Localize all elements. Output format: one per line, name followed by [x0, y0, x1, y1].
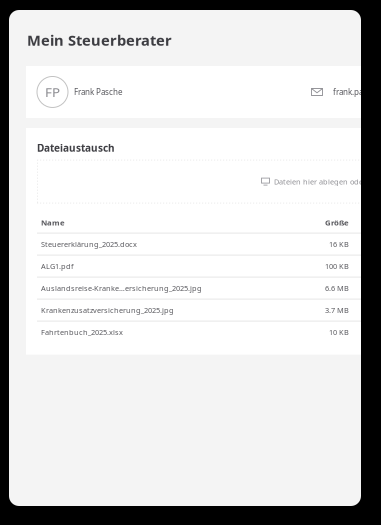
staticText: 10 KB: [329, 327, 349, 337]
button[interactable]: Fahrtenbuch_2025.xlsx: [37, 322, 381, 343]
staticText: frank.pasche@kanzlei-mueller.de: [333, 86, 381, 97]
staticText: ALG1.pdf: [41, 261, 74, 271]
button[interactable]: ALG1.pdf: [37, 256, 381, 277]
staticText: Auslandsreise-Kranke…ersicherung_2025.jp…: [41, 283, 202, 293]
staticText: Krankenzusatzversicherung_2025.jpg: [41, 305, 174, 315]
button[interactable]: Auslandsreise-Kranke…ersicherung_2025.jp…: [37, 278, 381, 299]
staticText: 16 KB: [329, 239, 349, 249]
button[interactable]: Krankenzusatzversicherung_2025.jpg: [37, 300, 381, 321]
button[interactable]: Steuererklärung_2025.docx: [37, 234, 381, 255]
button[interactable]: FP: [26, 66, 381, 118]
button[interactable]: Dateien hier ablegen oder auswählen: [37, 160, 381, 204]
staticText: 100 KB: [325, 261, 349, 271]
staticText: Dateiaustausch: [37, 141, 115, 155]
staticText: Größe: [325, 217, 349, 228]
staticText: Steuererklärung_2025.docx: [41, 239, 137, 249]
staticText: 3.7 MB: [325, 305, 349, 315]
staticText: Dateien hier ablegen oder auswählen: [274, 177, 381, 187]
staticText: 6.6 MB: [325, 283, 349, 293]
staticText: Name: [41, 217, 65, 228]
staticText: FP: [45, 83, 60, 101]
staticText: Fahrtenbuch_2025.xlsx: [41, 327, 123, 337]
staticText: Frank Pasche: [74, 86, 123, 97]
staticText: Mein Steuerberater: [27, 30, 172, 50]
